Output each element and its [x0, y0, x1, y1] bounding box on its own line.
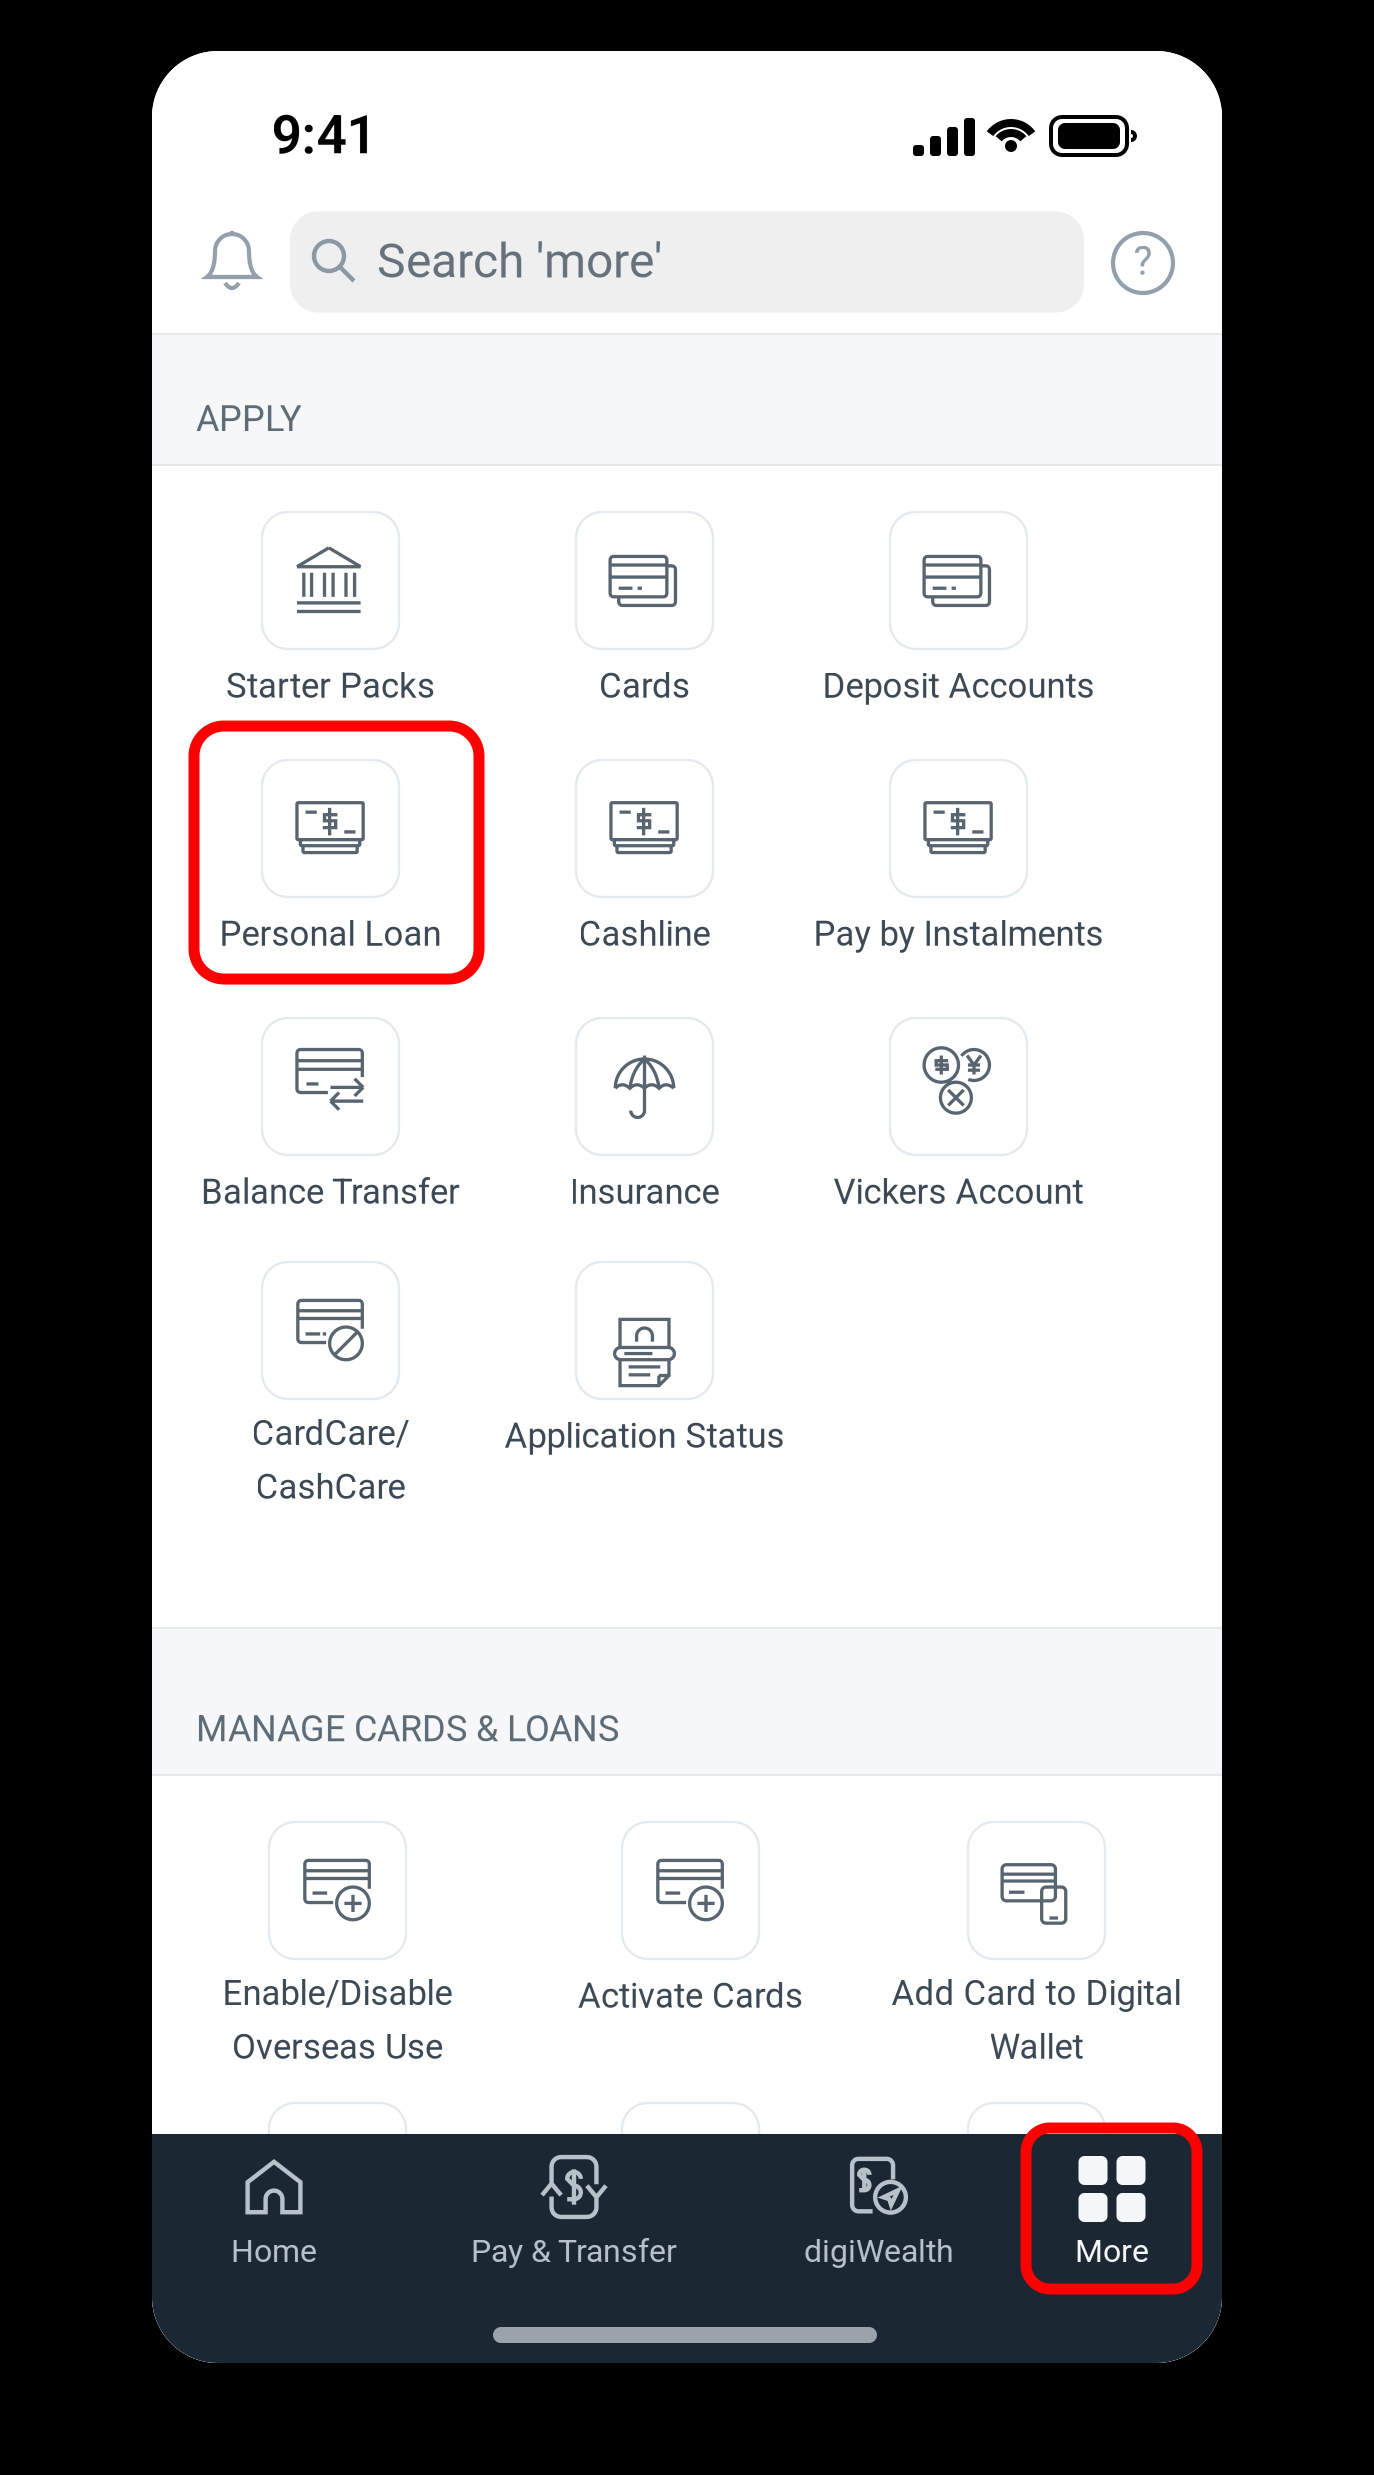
- staticText: Activate Cards: [578, 1976, 803, 2016]
- staticText: digiWealth: [804, 2233, 954, 2269]
- button[interactable]: Pay & Transfer: [0, 0, 1374, 2475]
- button[interactable]: Activate Cards: [0, 0, 1374, 2475]
- staticText: Enable/Disable: [222, 1973, 452, 2013]
- button[interactable]: Help: [1098, 218, 1188, 308]
- staticText: Balance Transfer: [201, 1172, 460, 1212]
- button[interactable]: Application Status: [0, 0, 1374, 2475]
- staticText: Cards: [599, 666, 690, 706]
- staticText: CardCare/: [251, 1413, 409, 1453]
- button[interactable]: Cashline: [0, 0, 1374, 2475]
- staticText: Overseas Use: [232, 2027, 443, 2067]
- staticText: ?: [1133, 238, 1152, 284]
- staticText: Insurance: [569, 1172, 719, 1212]
- button[interactable]: Search 'more': [0, 0, 1374, 2475]
- staticText: Search 'more': [377, 234, 662, 288]
- button[interactable]: Enable/Disable: [0, 0, 1374, 2475]
- staticText: Add Card to Digital: [891, 1973, 1181, 2013]
- button[interactable]: digiWealth: [0, 0, 1374, 2475]
- button[interactable]: Balance Transfer: [0, 0, 1374, 2475]
- button[interactable]: Personal Loan: [0, 0, 1374, 2475]
- staticText: More: [1075, 2233, 1149, 2269]
- button[interactable]: CardCare/: [0, 0, 1374, 2475]
- staticText: Pay by Instalments: [813, 914, 1103, 954]
- button[interactable]: Insurance: [0, 0, 1374, 2475]
- button[interactable]: Cards: [0, 0, 1374, 2475]
- staticText: APPLY: [196, 398, 302, 439]
- button[interactable]: Pay by Instalments: [0, 0, 1374, 2475]
- staticText: Application Status: [504, 1416, 784, 1456]
- staticText: Wallet: [989, 2027, 1083, 2067]
- staticText: Home: [231, 2233, 317, 2269]
- button[interactable]: Deposit Accounts: [0, 0, 1374, 2475]
- button[interactable]: Home: [0, 0, 1374, 2475]
- staticText: Vickers Account: [833, 1172, 1083, 1212]
- button[interactable]: Add Card to Digital: [0, 0, 1374, 2475]
- staticText: MANAGE CARDS & LOANS: [196, 1708, 619, 1749]
- staticText: Starter Packs: [226, 666, 435, 706]
- button[interactable]: Starter Packs: [0, 0, 1374, 2475]
- staticText: 9:41: [271, 104, 376, 165]
- button[interactable]: Vickers Account: [0, 0, 1374, 2475]
- staticText: Personal Loan: [219, 914, 441, 954]
- button[interactable]: More: [0, 0, 1374, 2475]
- staticText: CashCare: [255, 1467, 405, 1507]
- button[interactable]: Notifications: [189, 212, 275, 312]
- staticText: Deposit Accounts: [822, 666, 1094, 706]
- staticText: Cashline: [578, 914, 710, 954]
- staticText: Pay & Transfer: [471, 2233, 677, 2269]
